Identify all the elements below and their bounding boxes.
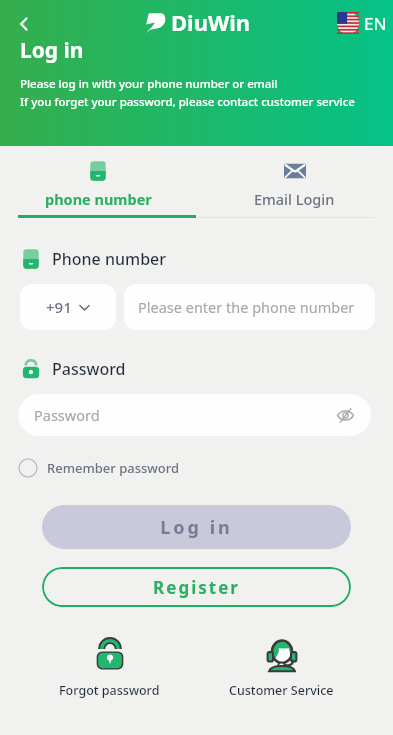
staticText: Remember password — [47, 459, 180, 477]
staticText: Password — [52, 358, 126, 380]
button[interactable]: Remember password — [16, 456, 182, 480]
button[interactable]: Customer Service — [219, 635, 344, 701]
button[interactable]: EN — [337, 8, 387, 38]
staticText: DiuWin — [171, 7, 251, 37]
staticText: +91 — [46, 297, 72, 317]
button[interactable]: Register — [42, 567, 351, 607]
staticText: Phone number — [52, 248, 167, 270]
staticText: Forgot password — [59, 682, 160, 699]
button[interactable]: Email Login — [196, 152, 393, 215]
button[interactable]: +91 — [20, 284, 116, 330]
button[interactable]: Password — [18, 394, 371, 436]
staticText: Please enter the phone number — [138, 297, 355, 317]
staticText: Password — [34, 405, 333, 425]
staticText: If you forget your password, please cont… — [20, 94, 355, 110]
button[interactable]: DiuWin — [142, 6, 251, 38]
staticText: Register — [153, 576, 240, 599]
staticText: Customer Service — [229, 682, 334, 699]
button[interactable]: Back — [6, 6, 42, 42]
staticText: Please log in with your phone number or … — [20, 76, 278, 92]
staticText: phone number — [45, 189, 152, 209]
staticText: Log in — [160, 515, 233, 540]
button[interactable]: Show password — [333, 403, 357, 427]
button[interactable]: phone number — [0, 152, 196, 215]
staticText: Log in — [20, 36, 84, 65]
staticText: Email Login — [254, 189, 335, 209]
staticText: EN — [364, 12, 387, 35]
button[interactable]: Log in — [42, 505, 351, 549]
button[interactable]: Please enter the phone number — [124, 284, 375, 330]
button[interactable]: Forgot password — [49, 635, 170, 701]
